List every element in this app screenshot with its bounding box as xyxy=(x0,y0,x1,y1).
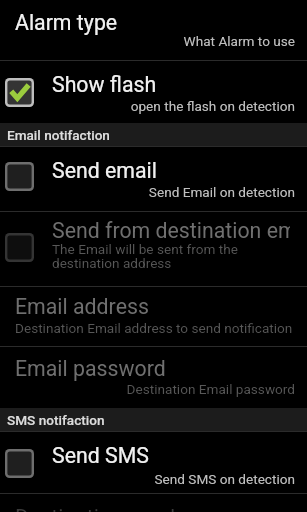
staticText: Destination Email password xyxy=(0,381,295,397)
staticText: open the flash on detection xyxy=(0,98,295,114)
staticText: Email address xyxy=(15,294,149,319)
button[interactable]: Email address xyxy=(0,287,307,346)
button[interactable]: Show flash checkbox, checked xyxy=(0,61,307,123)
button[interactable]: Send email checkbox xyxy=(0,148,307,211)
staticText: Send SMS on detection xyxy=(0,471,295,487)
other: Send from destination email checkbox, di… xyxy=(5,233,34,262)
staticText: Show flash xyxy=(52,72,157,97)
staticText: Alarm type xyxy=(15,10,118,35)
staticText: Email notifaction xyxy=(7,127,110,143)
staticText: Email password xyxy=(15,356,166,381)
staticText: Send email xyxy=(52,158,157,183)
button[interactable]: Destination number xyxy=(0,494,307,512)
staticText: SMS notifaction xyxy=(7,412,105,428)
button[interactable]: Send from destination email checkbox, di… xyxy=(0,212,307,286)
staticText: Send SMS xyxy=(52,443,149,468)
other: Send email checkbox xyxy=(5,162,34,191)
staticText: Destination Email address to send notifi… xyxy=(15,320,293,336)
staticText: Send from destination email xyxy=(52,218,290,243)
other: Show flash checkbox, checked xyxy=(5,78,34,107)
staticText: Send Email on detection xyxy=(0,184,295,200)
other: Send SMS checkbox xyxy=(5,449,34,478)
staticText: The Email will be sent from the destinat… xyxy=(52,241,238,272)
button[interactable]: Send SMS checkbox xyxy=(0,432,307,493)
button[interactable]: Alarm type xyxy=(0,0,307,60)
button[interactable]: Email password xyxy=(0,347,307,408)
staticText: Destination number xyxy=(15,505,201,512)
staticText: What Alarm to use xyxy=(0,33,295,49)
